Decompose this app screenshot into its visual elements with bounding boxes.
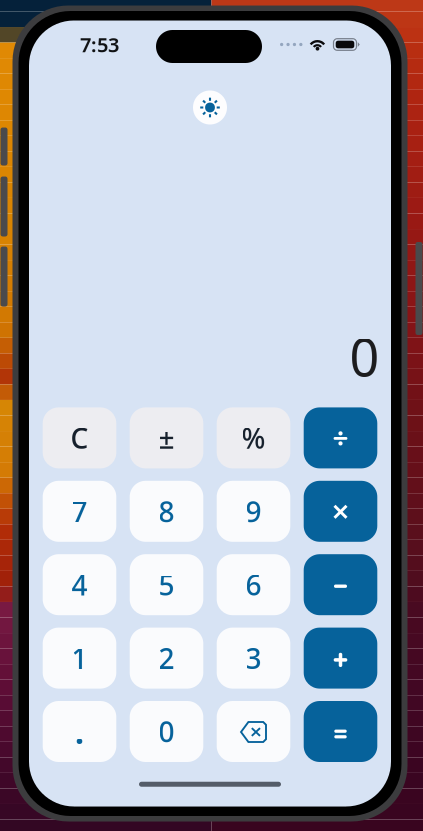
staticText: 7 <box>71 493 87 530</box>
staticText: 5 <box>158 566 174 603</box>
button[interactable]: % <box>217 407 290 468</box>
button[interactable]: 6 <box>217 554 290 615</box>
button[interactable]: C <box>43 407 116 468</box>
button[interactable]: 5 <box>130 554 203 615</box>
staticText: 7:53 <box>80 31 119 58</box>
button[interactable]: 1 <box>43 628 116 689</box>
button[interactable]: 7 <box>43 481 116 542</box>
button[interactable]: 8 <box>130 481 203 542</box>
staticText: 0 <box>158 713 174 750</box>
button[interactable]: Subtract <box>304 554 377 615</box>
staticText: 4 <box>71 566 87 603</box>
button[interactable]: ± <box>130 407 203 468</box>
button[interactable]: . <box>43 701 116 762</box>
staticText: 3 <box>245 639 261 677</box>
staticText: % <box>241 419 265 456</box>
staticText: 9 <box>245 493 261 530</box>
staticText: . <box>75 710 84 753</box>
button[interactable]: Multiply <box>304 481 377 542</box>
button[interactable]: 3 <box>217 628 290 689</box>
button[interactable]: Delete <box>217 701 290 762</box>
button[interactable]: Divide <box>304 407 377 468</box>
staticText: 0 <box>349 322 379 391</box>
staticText: C <box>70 419 88 456</box>
staticText: 2 <box>158 639 174 677</box>
staticText: 1 <box>71 639 87 677</box>
button[interactable]: Equals <box>304 701 377 762</box>
button[interactable]: 0 <box>130 701 203 762</box>
button[interactable]: 4 <box>43 554 116 615</box>
button[interactable]: Add <box>304 628 377 689</box>
button[interactable]: Toggle appearance <box>193 90 227 124</box>
button[interactable]: 2 <box>130 628 203 689</box>
staticText: ± <box>158 419 174 456</box>
staticText: 6 <box>245 566 261 603</box>
staticText: 8 <box>158 493 174 530</box>
button[interactable]: 9 <box>217 481 290 542</box>
